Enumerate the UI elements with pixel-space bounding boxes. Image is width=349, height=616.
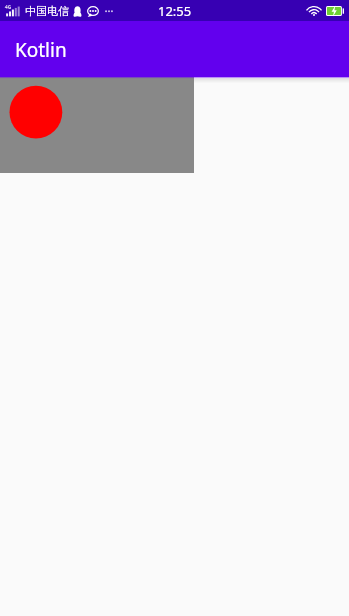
staticText: 中国电信: [25, 4, 69, 18]
staticText: Kotlin: [15, 37, 67, 63]
staticText: 12:55: [158, 2, 192, 20]
button[interactable]: Red circle canvas: [0, 77, 194, 173]
